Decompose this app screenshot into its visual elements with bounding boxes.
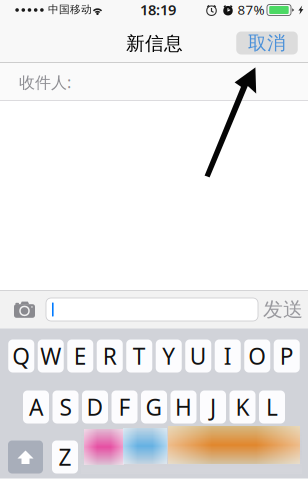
staticText: U	[190, 341, 207, 371]
staticText: D	[86, 392, 103, 422]
staticText: E	[74, 341, 87, 371]
button[interactable]: Shift	[8, 440, 43, 473]
staticText: I	[224, 341, 232, 371]
button[interactable]: K	[229, 390, 255, 423]
button[interactable]: H	[170, 390, 196, 423]
button[interactable]: F	[111, 390, 137, 423]
button[interactable]: G	[141, 390, 167, 423]
button[interactable]: J	[200, 390, 226, 423]
button[interactable]: Attach photo	[11, 298, 37, 320]
button[interactable]: D	[82, 390, 108, 423]
staticText: 18:19	[140, 0, 176, 19]
button[interactable]: Y	[156, 339, 182, 372]
staticText: L	[266, 392, 278, 422]
staticText: H	[175, 392, 192, 422]
button[interactable]: Z	[52, 440, 78, 473]
staticText: J	[210, 392, 216, 422]
staticText: G	[145, 392, 162, 422]
staticText: W	[40, 341, 61, 371]
button[interactable]: Q	[8, 339, 34, 372]
staticText: O	[248, 341, 266, 371]
staticText: Z	[58, 442, 71, 472]
button[interactable]: U	[185, 339, 211, 372]
staticText: A	[29, 392, 43, 422]
staticText: Q	[12, 341, 30, 371]
button[interactable]: A	[23, 390, 49, 423]
staticText: 发送	[263, 297, 303, 322]
staticText: 中国移动	[48, 3, 92, 16]
staticText: Y	[162, 341, 175, 371]
button[interactable]: W	[38, 339, 64, 372]
button[interactable]: P	[274, 339, 300, 372]
button[interactable]: R	[97, 339, 123, 372]
button[interactable]: O	[244, 339, 270, 372]
staticText: F	[118, 392, 130, 422]
button[interactable]: I	[215, 339, 241, 372]
button[interactable]: L	[259, 390, 285, 423]
button[interactable]: E	[67, 339, 93, 372]
staticText: 取消	[248, 31, 286, 54]
staticText: K	[235, 392, 249, 422]
staticText: 87%	[237, 1, 264, 18]
staticText: P	[280, 341, 294, 371]
staticText: R	[103, 341, 117, 371]
staticText: S	[59, 392, 71, 422]
button[interactable]: T	[126, 339, 152, 372]
staticText: 收件人:	[19, 71, 71, 93]
button[interactable]: S	[52, 390, 78, 423]
staticText: 新信息	[126, 32, 183, 55]
button[interactable]: 发送	[263, 297, 303, 321]
button[interactable]: 取消	[236, 31, 298, 54]
staticText: T	[133, 341, 146, 371]
